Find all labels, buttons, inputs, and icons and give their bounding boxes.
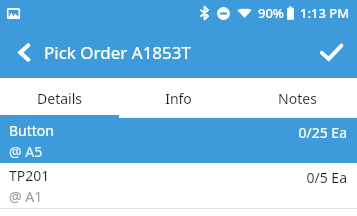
staticText: TP201	[9, 166, 50, 185]
staticText: Button	[9, 121, 54, 140]
button[interactable]: Confirm	[311, 32, 351, 72]
button[interactable]: Button	[0, 118, 357, 163]
button[interactable]: Back	[4, 32, 44, 72]
staticText: Details	[37, 89, 82, 108]
staticText: 0/5 Ea	[306, 168, 347, 187]
staticText: 0/25 Ea	[298, 123, 347, 142]
button[interactable]: Notes	[238, 78, 357, 118]
staticText: @ A1	[9, 187, 43, 206]
button[interactable]: Info	[119, 78, 238, 118]
staticText: 90%	[258, 4, 284, 22]
button[interactable]: Details	[0, 78, 119, 118]
staticText: Pick Order A1853T	[44, 41, 191, 64]
staticText: 1:13 PM	[300, 4, 350, 22]
staticText: @ A5	[9, 142, 43, 161]
button[interactable]: TP201	[0, 163, 357, 208]
staticText: Info	[165, 89, 192, 108]
staticText: Notes	[278, 89, 317, 108]
